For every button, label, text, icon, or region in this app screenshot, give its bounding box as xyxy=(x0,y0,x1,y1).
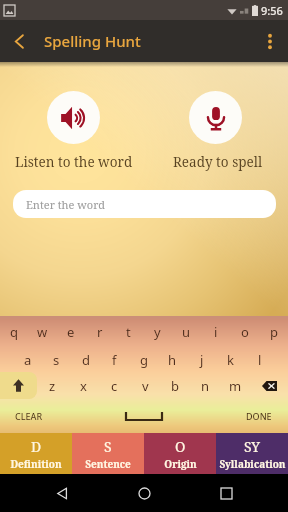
staticText: s xyxy=(53,351,60,369)
staticText: w xyxy=(37,323,48,341)
button[interactable]: Shift xyxy=(0,372,37,399)
staticText: DONE xyxy=(246,410,272,422)
staticText: i xyxy=(214,323,218,341)
staticText: Listen to the word xyxy=(15,153,133,171)
button[interactable]: s xyxy=(42,347,71,372)
button[interactable]: r xyxy=(85,316,114,347)
staticText: o xyxy=(241,323,249,341)
button[interactable]: Recent apps xyxy=(206,474,246,512)
button[interactable]: g xyxy=(129,347,158,372)
staticText: Enter the word xyxy=(26,197,106,212)
staticText: r xyxy=(97,323,103,341)
staticText: a xyxy=(24,351,32,369)
staticText: f xyxy=(112,351,117,369)
button[interactable]: t xyxy=(114,316,143,347)
staticText: z xyxy=(49,377,56,395)
staticText: Definition xyxy=(10,457,62,471)
button[interactable]: v xyxy=(130,372,160,399)
staticText: e xyxy=(67,323,75,341)
button[interactable]: More options xyxy=(252,20,288,62)
button[interactable]: m xyxy=(220,372,250,399)
staticText: y xyxy=(154,323,161,341)
staticText: q xyxy=(10,323,18,341)
staticText: m xyxy=(229,377,242,395)
button[interactable]: y xyxy=(143,316,172,347)
staticText: g xyxy=(140,351,148,369)
button[interactable]: e xyxy=(56,316,85,347)
button[interactable]: p xyxy=(259,316,288,347)
staticText: j xyxy=(200,351,204,369)
staticText: d xyxy=(82,351,90,369)
button[interactable]: z xyxy=(37,372,68,399)
button[interactable]: Space xyxy=(58,399,230,433)
staticText: v xyxy=(142,377,149,395)
button[interactable]: DONE xyxy=(230,399,288,433)
button[interactable]: Back xyxy=(42,474,82,512)
staticText: n xyxy=(201,377,210,395)
staticText: O xyxy=(175,437,186,456)
staticText: Origin xyxy=(164,457,197,471)
button[interactable]: Enter the word xyxy=(13,190,276,218)
button[interactable]: l xyxy=(245,347,274,372)
button[interactable]: c xyxy=(99,372,130,399)
button[interactable]: j xyxy=(187,347,216,372)
button[interactable]: u xyxy=(172,316,201,347)
button[interactable]: d xyxy=(71,347,100,372)
button[interactable]: Home xyxy=(124,474,164,512)
button[interactable]: w xyxy=(28,316,56,347)
staticText: SY xyxy=(244,437,261,456)
staticText: Spelling Hunt xyxy=(44,31,141,51)
staticText: 9:56 xyxy=(261,3,283,18)
button[interactable]: Back xyxy=(0,20,38,62)
staticText: S xyxy=(104,437,112,456)
button[interactable]: q xyxy=(0,316,28,347)
button[interactable]: x xyxy=(68,372,99,399)
staticText: c xyxy=(111,377,118,395)
staticText: l xyxy=(258,351,262,369)
staticText: Syllabication xyxy=(219,457,286,471)
staticText: t xyxy=(126,323,131,341)
staticText: Ready to spell xyxy=(173,153,263,171)
button[interactable]: Ready to spell xyxy=(189,91,242,144)
button[interactable]: CLEAR xyxy=(0,399,58,433)
button[interactable]: n xyxy=(190,372,220,399)
button[interactable]: a xyxy=(13,347,42,372)
staticText: b xyxy=(171,377,179,395)
button[interactable]: Backspace xyxy=(250,372,288,399)
staticText: x xyxy=(80,377,87,395)
staticText: h xyxy=(168,351,177,369)
staticText: CLEAR xyxy=(15,410,43,422)
staticText: Sentence xyxy=(85,457,131,471)
button[interactable]: h xyxy=(158,347,187,372)
staticText: u xyxy=(182,323,191,341)
button[interactable]: O xyxy=(144,433,216,474)
button[interactable]: SY xyxy=(216,433,288,474)
button[interactable]: D xyxy=(0,433,72,474)
button[interactable]: Listen to the word xyxy=(47,91,100,144)
staticText: D xyxy=(31,437,42,456)
button[interactable]: k xyxy=(216,347,245,372)
staticText: p xyxy=(270,323,278,341)
button[interactable]: o xyxy=(230,316,259,347)
button[interactable]: b xyxy=(160,372,190,399)
other: Ready to spell xyxy=(203,105,229,131)
other: Listen to the word xyxy=(60,104,88,132)
button[interactable]: S xyxy=(72,433,144,474)
staticText: k xyxy=(227,351,234,369)
button[interactable]: f xyxy=(100,347,129,372)
button[interactable]: i xyxy=(201,316,230,347)
